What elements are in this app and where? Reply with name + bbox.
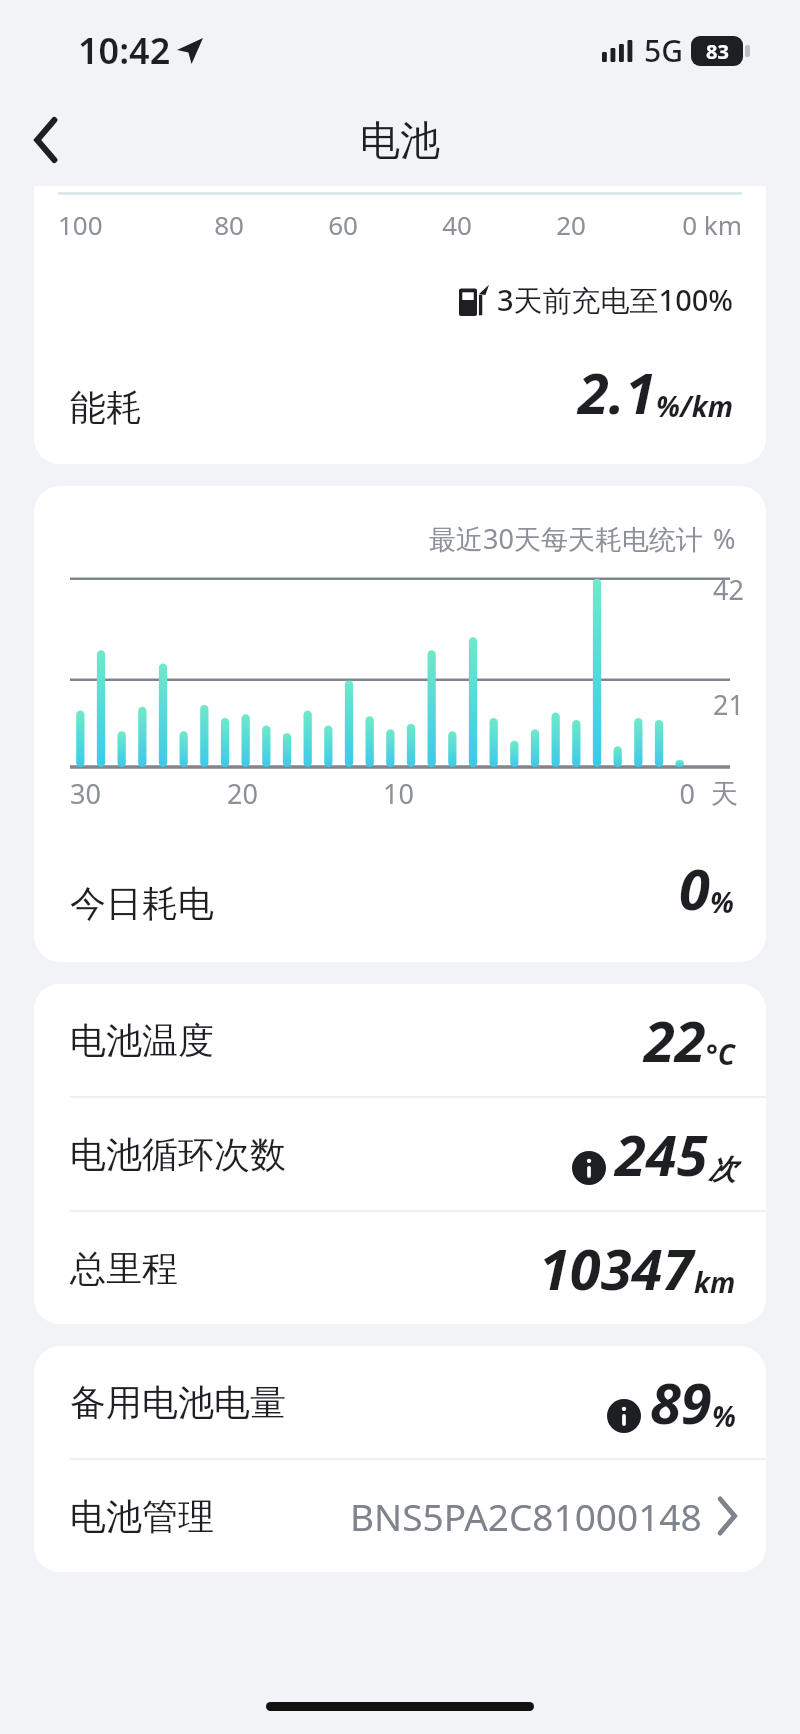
staticText: 245 [615,1116,708,1192]
staticText: 0 km [628,207,742,242]
staticText: 今日耗电 [70,881,214,926]
staticText: % [713,520,736,557]
button[interactable]: 电池管理 [34,1460,766,1572]
staticText: % [712,1397,736,1435]
button[interactable]: 电池温度 [34,984,766,1096]
staticText: 20 [227,775,383,812]
staticText: 20 [514,207,628,242]
staticText: 次 [708,1152,736,1187]
staticText: 电池管理 [70,1494,214,1539]
staticText: 2.1 [578,354,656,430]
staticText: 80 [172,207,286,242]
staticText: 22 [644,1002,706,1078]
staticText: 83 [706,38,729,65]
staticText: 60 [286,207,400,242]
staticText: 0 [679,850,710,926]
staticText: 5G [644,30,683,71]
staticText: 天 [711,777,738,811]
button[interactable]: 总里程 [34,1212,766,1324]
staticText: 10:42 [78,26,171,75]
staticText: 21 [713,686,744,723]
staticText: 40 [400,207,514,242]
button[interactable]: Back [14,108,78,172]
staticText: 备用电池电量 [70,1380,286,1425]
staticText: 3天前充电至100% [497,280,734,320]
staticText: 电池温度 [70,1018,214,1063]
staticText: 电池 [360,115,440,165]
staticText: %/km [656,387,734,425]
button[interactable]: 电池循环次数 [34,1098,766,1210]
staticText: BNS5PA2C81000148 [350,1491,702,1541]
staticText: 10 [383,775,539,812]
staticText: °C [706,1035,736,1073]
staticText: 100 [58,207,172,242]
staticText: 42 [713,571,744,608]
staticText: 10347 [539,1230,694,1306]
staticText: 电池循环次数 [70,1132,286,1177]
staticText: 30 [70,775,227,812]
staticText: km [694,1263,736,1301]
staticText: 能耗 [70,385,142,430]
button[interactable]: 备用电池电量 [34,1346,766,1458]
staticText: 0 [539,775,695,812]
staticText: 89 [650,1364,712,1440]
staticText: 最近30天每天耗电统计 [429,520,703,557]
staticText: 总里程 [70,1246,178,1291]
staticText: % [710,883,734,921]
